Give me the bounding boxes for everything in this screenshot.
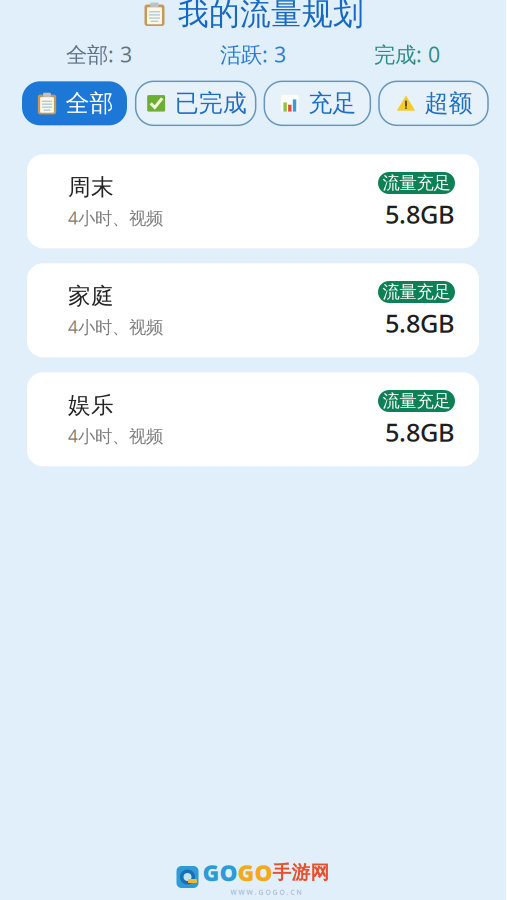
- staticText: 5.8GB: [385, 415, 455, 449]
- staticText: 流量充足: [382, 281, 450, 303]
- staticText: 我的流量规划: [178, 0, 364, 33]
- staticText: 流量充足: [382, 172, 450, 194]
- staticText: 流量充足: [382, 390, 450, 412]
- staticText: 全部: [65, 89, 113, 118]
- button[interactable]: 已完成: [136, 81, 256, 125]
- button[interactable]: 周末: [27, 154, 479, 248]
- staticText: 完成: 0: [374, 40, 440, 68]
- staticText: 4小时、视频: [68, 206, 163, 229]
- button[interactable]: 家庭: [27, 263, 479, 357]
- staticText: 5.8GB: [385, 197, 455, 231]
- staticText: 全部: 3: [66, 40, 132, 68]
- staticText: GO: [237, 857, 272, 888]
- staticText: 4小时、视频: [68, 315, 163, 338]
- staticText: 超额: [424, 89, 472, 118]
- staticText: 手游网: [272, 861, 329, 884]
- staticText: 已完成: [175, 89, 247, 118]
- staticText: GO: [202, 857, 237, 888]
- staticText: 充足: [308, 89, 356, 118]
- staticText: 活跃: 3: [220, 40, 286, 68]
- button[interactable]: 超额: [379, 81, 488, 125]
- button[interactable]: 娱乐: [27, 372, 479, 466]
- staticText: 家庭: [68, 282, 114, 310]
- staticText: 周末: [68, 173, 114, 201]
- staticText: 娱乐: [68, 391, 114, 419]
- staticText: W W W . G O G O . C N: [230, 888, 301, 896]
- button[interactable]: 全部: [22, 81, 127, 125]
- staticText: 5.8GB: [385, 306, 455, 340]
- button[interactable]: 充足: [264, 81, 370, 125]
- staticText: 4小时、视频: [68, 424, 163, 447]
